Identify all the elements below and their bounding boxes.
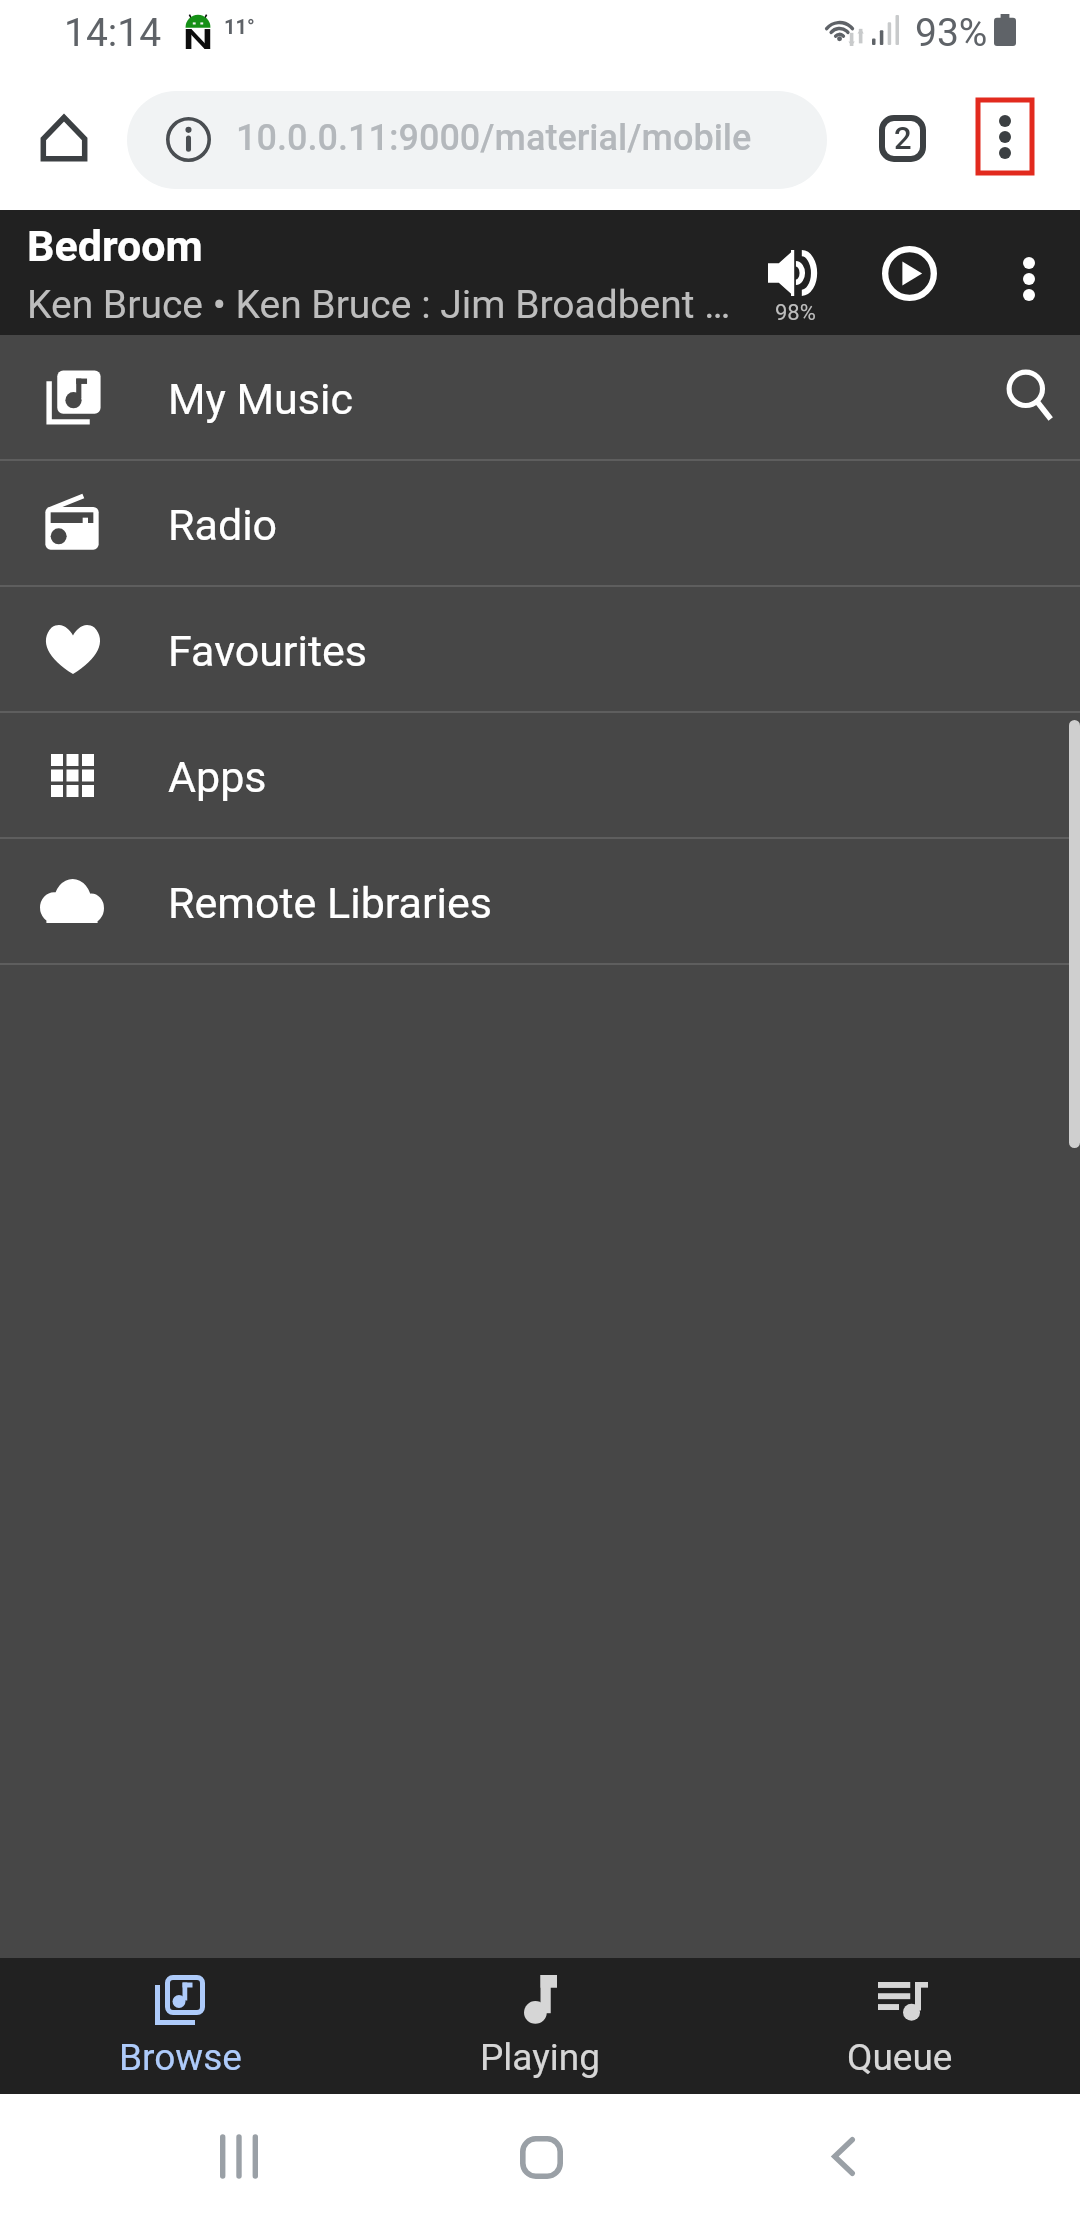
button[interactable]: Playing (360, 1958, 720, 2094)
staticText: Browse (119, 2036, 242, 2079)
button[interactable]: Tabs (852, 88, 952, 188)
button[interactable]: Volume (745, 210, 845, 335)
staticText: 98% (775, 300, 816, 326)
button[interactable]: Home (478, 2111, 604, 2203)
button[interactable]: Remote Libraries (0, 839, 1080, 963)
staticText: 10.0.0.11:9000/material/mobile (236, 117, 752, 159)
staticText: My Music (168, 374, 353, 424)
button[interactable]: Favourites (0, 587, 1080, 711)
button[interactable]: 10.0.0.11:9000/material/mobile (127, 91, 827, 189)
button[interactable]: My Music (0, 335, 1080, 459)
button[interactable]: Recents (176, 2111, 302, 2203)
staticText: Bedroom (27, 221, 203, 271)
button[interactable]: Browse (0, 1958, 360, 2094)
staticText: Radio (168, 500, 278, 550)
button[interactable]: Queue (720, 1958, 1080, 2094)
staticText: 2 (894, 120, 912, 156)
staticText: 93% (915, 10, 988, 56)
staticText: Favourites (168, 626, 367, 676)
button[interactable]: Play (861, 210, 957, 335)
button[interactable]: Apps (0, 713, 1080, 837)
staticText: 14:14 (64, 10, 162, 56)
button[interactable]: Search (970, 335, 1080, 459)
staticText: 11° (224, 15, 255, 38)
staticText: Apps (168, 752, 267, 802)
staticText: Ken Bruce • Ken Bruce : Jim Broadbent … (27, 282, 731, 328)
staticText: Remote Libraries (168, 878, 492, 928)
button[interactable]: Menu (977, 210, 1080, 335)
button[interactable]: More options (978, 100, 1032, 173)
staticText: Queue (847, 2036, 953, 2079)
button[interactable]: Radio (0, 461, 1080, 585)
button[interactable]: Home (14, 88, 114, 188)
button[interactable]: Back (780, 2111, 906, 2203)
staticText: Playing (480, 2036, 600, 2079)
